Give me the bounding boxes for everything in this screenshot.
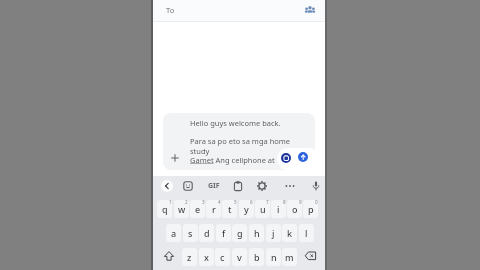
staticText: y	[244, 203, 249, 215]
button[interactable]	[169, 152, 181, 164]
button[interactable]: k	[282, 224, 297, 242]
button[interactable]: r	[206, 200, 221, 218]
button[interactable]: f	[216, 224, 231, 242]
button[interactable]	[163, 250, 175, 265]
button[interactable]: b	[249, 248, 264, 266]
staticText: Para sa po eto sa mga home	[190, 136, 291, 146]
staticText: 9	[299, 199, 302, 205]
button[interactable]: w	[174, 200, 189, 218]
button[interactable]: u	[255, 200, 270, 218]
button[interactable]	[153, 0, 325, 21]
button[interactable]: l	[299, 224, 314, 242]
staticText: g	[237, 227, 243, 239]
staticText: u	[260, 203, 266, 215]
button[interactable]	[232, 180, 244, 192]
staticText: b	[254, 251, 260, 263]
staticText: a	[171, 227, 177, 239]
staticText: Gamet Ang cellphone at	[190, 155, 275, 165]
button[interactable]: z	[182, 248, 197, 266]
button[interactable]	[256, 180, 268, 192]
button[interactable]: g	[232, 224, 247, 242]
staticText: w	[178, 203, 186, 215]
button[interactable]: GIF	[206, 180, 221, 192]
staticText: h	[254, 227, 260, 239]
staticText: t	[228, 203, 232, 215]
staticText: To	[166, 5, 175, 15]
button[interactable]: i	[271, 200, 286, 218]
button[interactable]: t	[222, 200, 237, 218]
staticText: l	[305, 227, 308, 239]
button[interactable]	[161, 180, 173, 192]
staticText: q	[162, 203, 168, 215]
button[interactable]: d	[199, 224, 214, 242]
button[interactable]: e	[190, 200, 205, 218]
staticText: 2	[185, 199, 188, 205]
button[interactable]: q	[157, 200, 172, 218]
button[interactable]	[303, 3, 317, 17]
button[interactable]	[284, 180, 296, 192]
staticText: 1	[169, 199, 172, 205]
staticText: d	[204, 227, 210, 239]
button[interactable]: h	[249, 224, 264, 242]
button[interactable]: y	[239, 200, 254, 218]
button[interactable]: o	[287, 200, 302, 218]
staticText: k	[287, 227, 293, 239]
staticText: s	[188, 227, 193, 239]
staticText: Hello guys welcome back.	[190, 118, 281, 128]
button[interactable]	[281, 153, 291, 163]
button[interactable]: n	[266, 248, 281, 266]
button[interactable]: j	[266, 224, 281, 242]
button[interactable]	[304, 250, 317, 265]
button[interactable]: p	[303, 200, 318, 218]
staticText: GIF	[208, 181, 220, 191]
staticText: 3	[202, 199, 205, 205]
button[interactable]	[163, 113, 315, 170]
staticText: e	[195, 203, 201, 215]
staticText: f	[222, 227, 226, 239]
button[interactable]: a	[166, 224, 181, 242]
staticText: z	[187, 251, 192, 263]
staticText: m	[285, 251, 294, 263]
staticText: o	[292, 203, 298, 215]
staticText: 7	[266, 199, 269, 205]
staticText: 0	[315, 199, 318, 205]
button[interactable]: m	[282, 248, 297, 266]
staticText: i	[277, 203, 280, 215]
button[interactable]: v	[232, 248, 247, 266]
button[interactable]: s	[183, 224, 198, 242]
staticText: v	[237, 251, 242, 263]
staticText: 5	[234, 199, 237, 205]
staticText: j	[272, 227, 275, 239]
button[interactable]	[182, 180, 194, 192]
staticText: study	[190, 146, 210, 156]
staticText: x	[204, 251, 209, 263]
staticText: 8	[283, 199, 286, 205]
staticText: p	[308, 203, 314, 215]
button[interactable]	[298, 152, 308, 162]
staticText: 6	[250, 199, 253, 205]
button[interactable]	[310, 180, 322, 192]
button[interactable]: x	[199, 248, 214, 266]
staticText: n	[271, 251, 277, 263]
staticText: 4	[218, 199, 221, 205]
button[interactable]: c	[215, 248, 230, 266]
staticText: c	[220, 251, 225, 263]
staticText: r	[212, 203, 216, 215]
